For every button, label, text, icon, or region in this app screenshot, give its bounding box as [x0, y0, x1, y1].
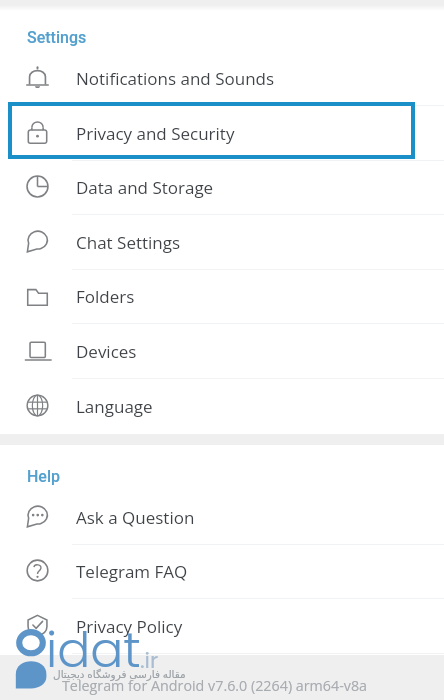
button[interactable]: Language	[0, 372, 444, 427]
staticText: Devices	[76, 340, 137, 363]
button[interactable]	[8, 102, 415, 159]
staticText: Data and Storage	[76, 176, 214, 199]
staticText: .ir	[140, 645, 159, 676]
staticText: Chat Settings	[76, 231, 181, 254]
staticText: Help	[27, 467, 60, 486]
button[interactable]: Data and Storage	[0, 153, 444, 208]
staticText: Ask a Question	[76, 506, 195, 529]
button[interactable]: Notifications and Sounds	[0, 44, 444, 99]
staticText: Privacy and Security	[76, 122, 235, 145]
staticText: Privacy Policy	[76, 615, 183, 638]
staticText: Folders	[76, 285, 135, 308]
staticText: مقاله فارسی فروشگاه دیجیتال	[53, 667, 186, 681]
staticText: Notifications and Sounds	[76, 67, 275, 90]
staticText: Settings	[27, 28, 87, 47]
staticText: Language	[76, 395, 153, 418]
button[interactable]: Privacy Policy	[0, 592, 444, 647]
button[interactable]: Ask a Question	[0, 483, 444, 538]
staticText: idat	[46, 616, 141, 685]
button[interactable]: Folders	[0, 262, 444, 317]
staticText: Telegram FAQ	[76, 560, 188, 583]
button[interactable]: Privacy and Security	[0, 99, 444, 154]
button[interactable]: Telegram FAQ	[0, 537, 444, 592]
button[interactable]: Devices	[0, 317, 444, 372]
button[interactable]: Chat Settings	[0, 208, 444, 263]
staticText: Telegram for Android v7.6.0 (2264) arm64…	[62, 676, 368, 695]
